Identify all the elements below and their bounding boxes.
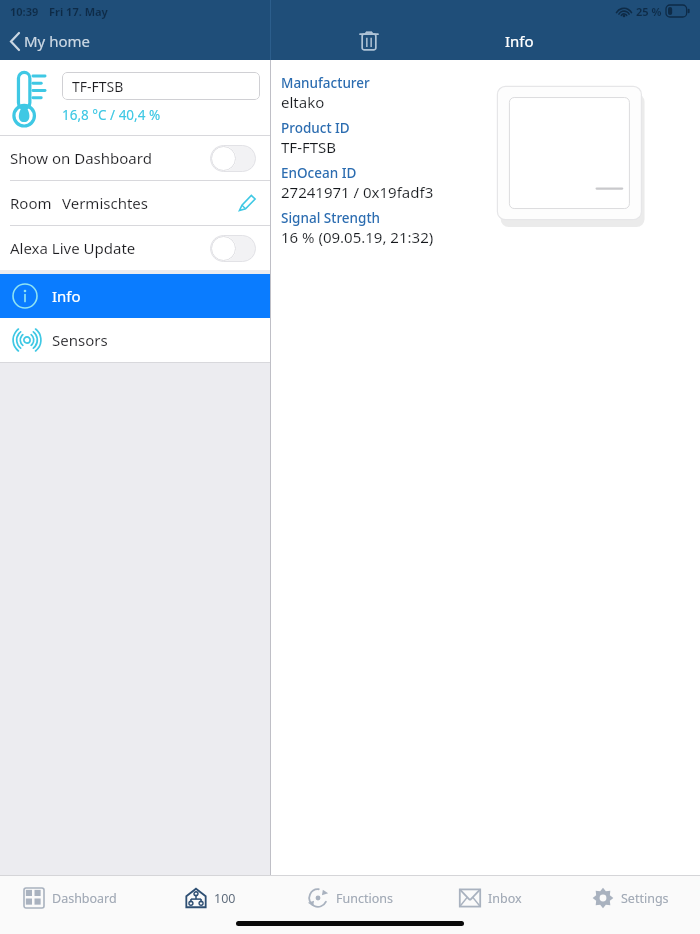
staticText: Room — [10, 193, 52, 213]
staticText: Dashboard — [52, 890, 117, 907]
button[interactable] — [210, 235, 256, 262]
staticText: eltako — [281, 92, 325, 112]
staticText: Settings — [621, 890, 669, 907]
staticText: Product ID — [281, 119, 350, 137]
button[interactable]: 100 — [140, 875, 280, 921]
staticText: EnOcean ID — [281, 164, 357, 182]
staticText: Functions — [336, 890, 393, 907]
button[interactable]: Sensors — [0, 318, 270, 362]
staticText: 16 % (09.05.19, 21:32) — [281, 227, 434, 247]
staticText: Sensors — [52, 330, 108, 350]
button[interactable] — [210, 145, 256, 172]
staticText: TF-FTSB — [72, 77, 124, 96]
staticText: Info — [505, 31, 534, 51]
staticText: Signal Strength — [281, 209, 381, 227]
staticText: Show on Dashboard — [10, 148, 152, 168]
staticText: Fri 17. May — [49, 4, 108, 19]
staticText: Info — [52, 286, 81, 306]
button[interactable]: Room — [0, 181, 270, 225]
staticText: Inbox — [488, 890, 522, 907]
button[interactable]: Dashboard — [0, 875, 140, 921]
button[interactable]: Info — [0, 274, 270, 318]
staticText: Alexa Live Update — [10, 238, 136, 258]
staticText: My home — [24, 31, 90, 51]
button[interactable]: Functions — [280, 875, 420, 921]
button[interactable]: TF-FTSB — [62, 72, 260, 100]
staticText: 27241971 / 0x19fadf3 — [281, 182, 434, 202]
button[interactable]: Delete — [339, 22, 399, 60]
button[interactable]: Show on Dashboard — [0, 136, 270, 180]
button[interactable]: My home — [0, 22, 98, 60]
staticText: 100 — [214, 890, 236, 907]
button[interactable]: Inbox — [420, 875, 560, 921]
staticText: 10:39 — [10, 4, 39, 19]
staticText: Vermischtes — [62, 193, 148, 213]
staticText: TF-FTSB — [281, 137, 337, 157]
staticText: 16,8 °C / 40,4 % — [62, 106, 161, 124]
staticText: Manufacturer — [281, 74, 370, 92]
button[interactable]: Settings — [560, 875, 700, 921]
button[interactable]: Alexa Live Update — [0, 226, 270, 270]
staticText: 25 % — [636, 4, 662, 19]
